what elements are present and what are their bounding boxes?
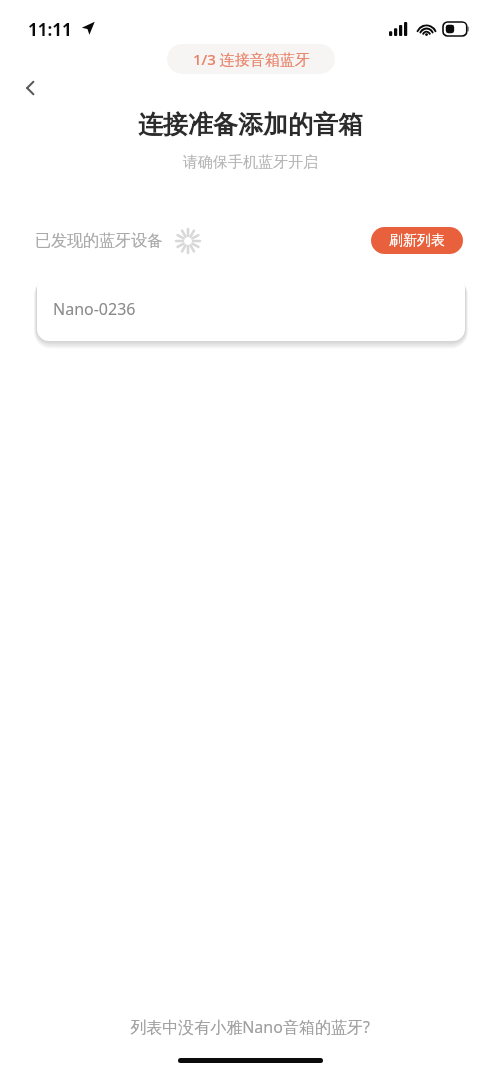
staticText: Nano-0236 [53,298,136,320]
staticText: 刷新列表 [389,232,445,250]
staticText: 列表中没有小雅Nano音箱的蓝牙? [130,1016,370,1038]
staticText: 已发现的蓝牙设备 [35,231,163,251]
staticText: 1/3 连接音箱蓝牙 [193,49,310,69]
button[interactable]: 1/3 连接音箱蓝牙 [167,44,335,74]
button[interactable]: 刷新列表 [371,227,463,254]
staticText: 11:11 [28,18,72,41]
staticText: 请确保手机蓝牙开启 [183,153,318,172]
staticText: 连接准备添加的音箱 [138,109,363,140]
button[interactable]: Back [10,67,52,109]
button[interactable]: 列表中没有小雅Nano音箱的蓝牙? [0,1012,500,1042]
button[interactable]: Nano-0236 [37,276,465,341]
